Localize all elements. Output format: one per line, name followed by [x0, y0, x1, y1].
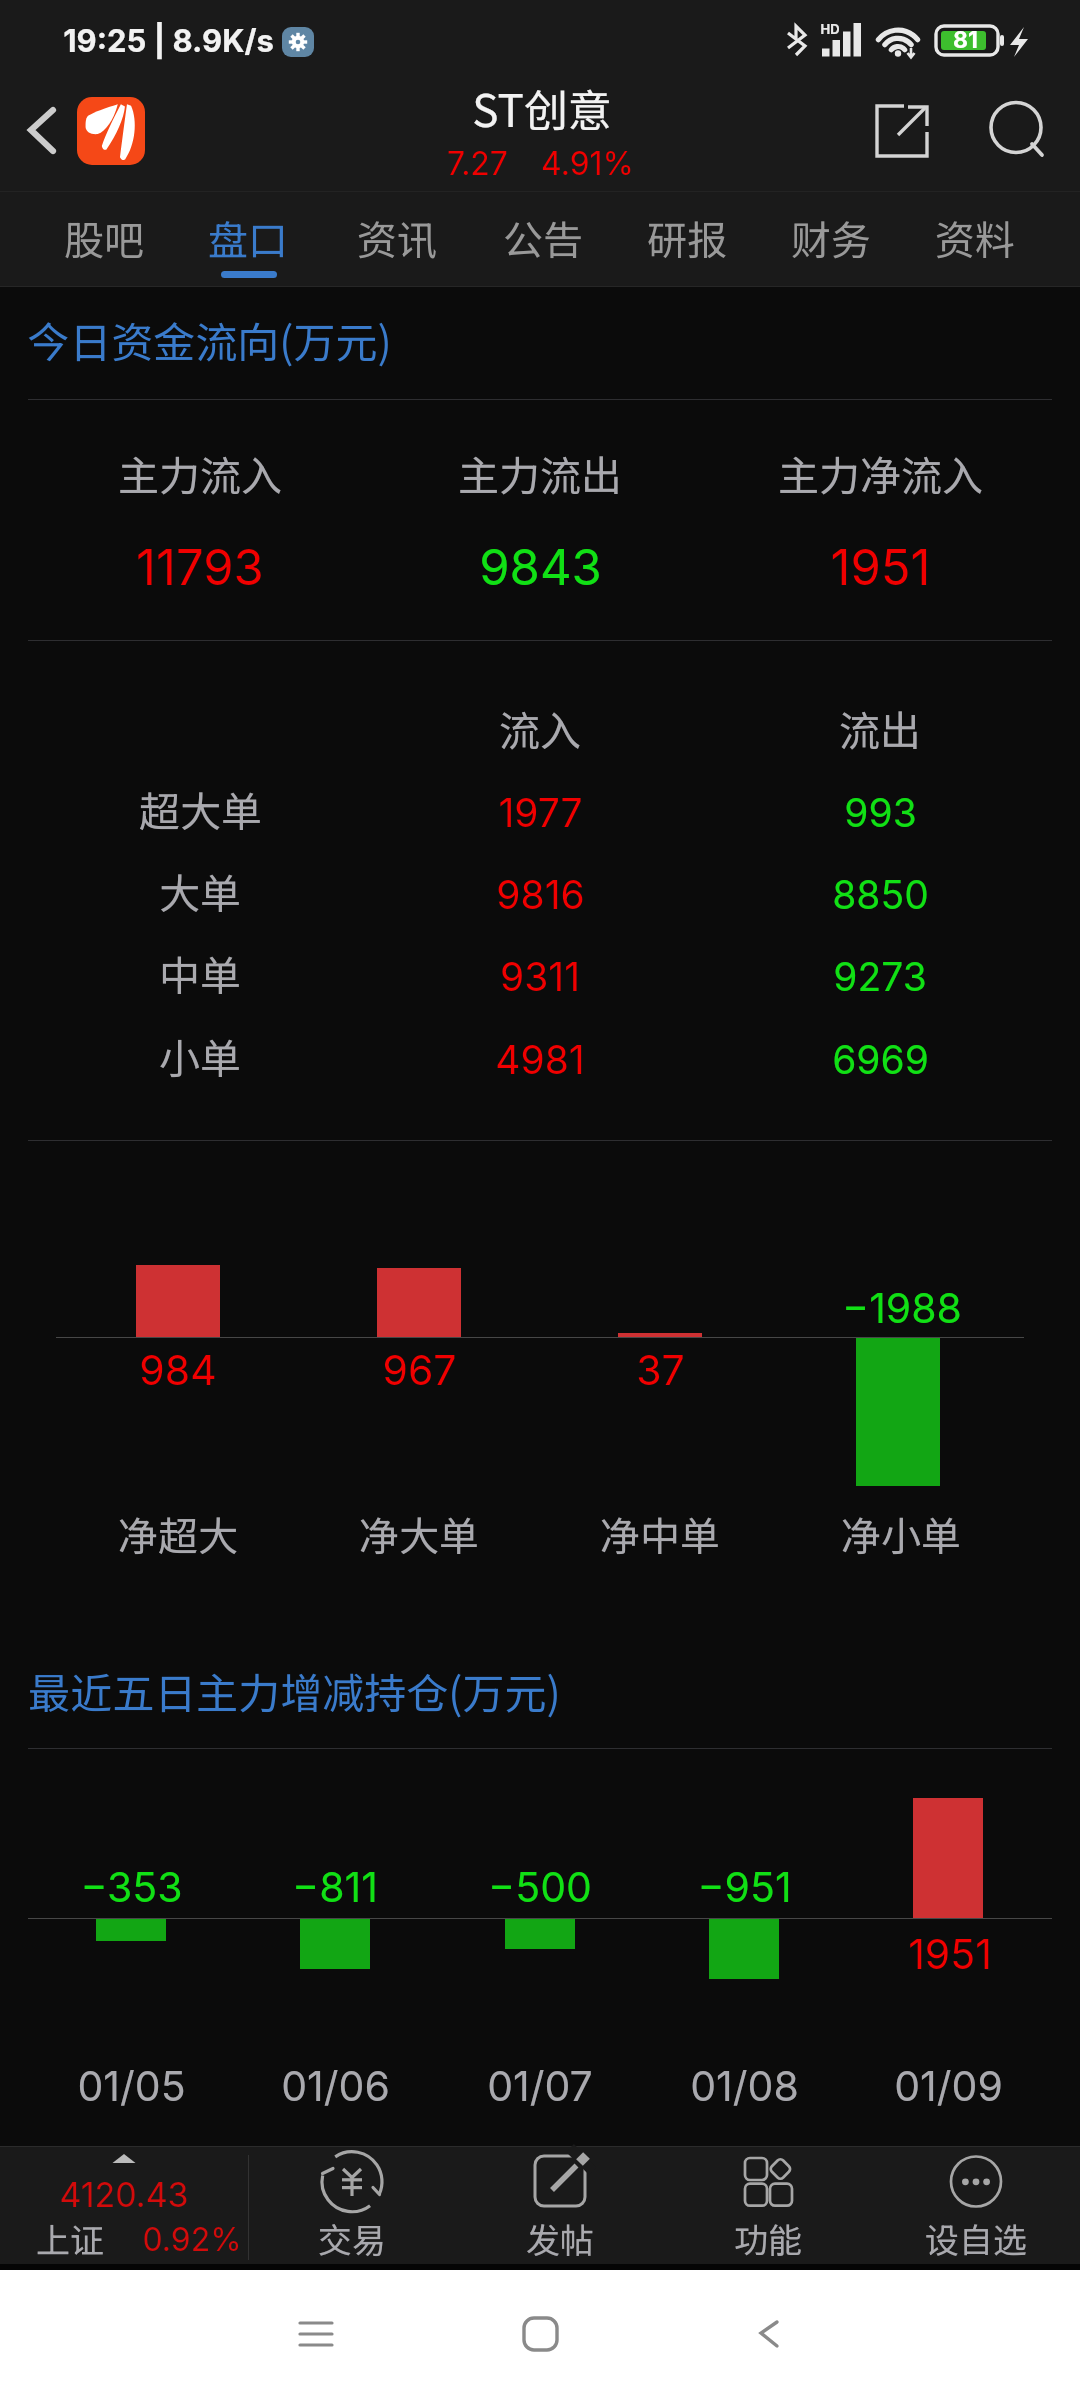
staticText: 01/09 — [894, 2061, 1003, 2111]
button[interactable]: Back — [8, 94, 76, 168]
button[interactable]: 盘口 — [178, 190, 318, 285]
staticText: 01/07 — [487, 2061, 593, 2111]
staticText: 6969 — [832, 1036, 929, 1083]
staticText: 财务 — [791, 209, 871, 267]
button[interactable]: 资料 — [905, 190, 1045, 285]
button[interactable]: Recent apps — [240, 2270, 390, 2400]
staticText: 01/08 — [690, 2061, 799, 2111]
staticText: 1977 — [498, 789, 583, 836]
staticText: 中单 — [159, 943, 241, 1002]
staticText: 主力流出 — [458, 443, 622, 502]
button[interactable]: 财务 — [761, 190, 901, 285]
staticText: −811 — [292, 1862, 378, 1912]
staticText: 4120.43 — [59, 2174, 189, 2215]
staticText: 发帖 — [526, 2214, 594, 2263]
staticText: 大单 — [159, 861, 241, 920]
staticText: 主力流入 — [118, 443, 282, 502]
staticText: 股吧 — [64, 209, 144, 267]
staticText: 超大单 — [139, 779, 262, 838]
button[interactable]: 资讯 — [327, 190, 467, 285]
button[interactable]: 研报 — [617, 190, 757, 285]
button[interactable]: 股吧 — [34, 190, 174, 285]
staticText: −500 — [488, 1862, 592, 1912]
staticText: 净超大 — [118, 1505, 238, 1563]
staticText: 1951 — [830, 538, 931, 597]
staticText: 01/05 — [77, 2061, 186, 2111]
staticText: 8850 — [832, 871, 929, 918]
button[interactable]: 上证指数 4120.43 0.92% — [0, 2147, 248, 2268]
staticText: HD — [820, 21, 840, 37]
staticText: 设自选 — [925, 2214, 1027, 2263]
staticText: 9273 — [833, 953, 927, 1000]
button[interactable]: 功能 — [664, 2147, 872, 2268]
staticText: 9816 — [496, 871, 585, 918]
staticText: 上证 — [36, 2214, 104, 2263]
staticText: 967 — [382, 1345, 457, 1395]
staticText: 19:25 | 8.9K/s — [63, 22, 274, 60]
staticText: 9311 — [500, 953, 580, 1000]
staticText: 0.92% — [142, 2220, 242, 2259]
staticText: −951 — [697, 1862, 792, 1912]
staticText: −353 — [80, 1862, 183, 1912]
staticText: 11793 — [136, 538, 264, 597]
staticText: −1988 — [842, 1283, 962, 1333]
staticText: 净大单 — [359, 1505, 479, 1563]
staticText: 主力净流入 — [778, 443, 983, 502]
button[interactable]: 公告 — [473, 190, 613, 285]
staticText: 984 — [139, 1345, 217, 1395]
staticText: 功能 — [734, 2214, 802, 2263]
staticText: ST创意 — [472, 76, 612, 140]
staticText: 4981 — [495, 1036, 585, 1083]
staticText: 今日资金流向(万元) — [27, 309, 392, 370]
staticText: 资料 — [935, 209, 1015, 267]
button[interactable]: 发帖 — [456, 2147, 664, 2268]
button[interactable]: Home — [465, 2270, 615, 2400]
staticText: 4.91% — [541, 144, 634, 183]
staticText: 81 — [953, 26, 978, 54]
staticText: 小单 — [159, 1026, 241, 1085]
staticText: 盘口 — [208, 209, 288, 267]
staticText: 最近五日主力增减持仓(万元) — [28, 1660, 561, 1721]
staticText: 交易 — [318, 2214, 386, 2263]
staticText: 993 — [844, 789, 917, 836]
staticText: 研报 — [647, 209, 727, 267]
button[interactable]: 设自选 — [872, 2147, 1080, 2268]
button[interactable]: 交易 — [248, 2147, 456, 2268]
button[interactable]: Search — [972, 83, 1060, 171]
staticText: 净中单 — [600, 1505, 720, 1563]
button[interactable]: Eastmoney — [77, 97, 145, 165]
staticText: 1951 — [908, 1929, 992, 1979]
button[interactable]: Share — [858, 88, 946, 176]
staticText: 9843 — [479, 538, 602, 597]
button[interactable]: Back — [695, 2270, 845, 2400]
staticText: 净小单 — [841, 1505, 961, 1563]
staticText: 公告 — [503, 209, 583, 267]
staticText: 01/06 — [281, 2061, 390, 2111]
staticText: 流出 — [839, 698, 921, 757]
staticText: 流入 — [499, 698, 581, 757]
staticText: 资讯 — [357, 209, 437, 267]
staticText: 37 — [636, 1345, 685, 1395]
staticText: 7.27 — [447, 144, 508, 183]
